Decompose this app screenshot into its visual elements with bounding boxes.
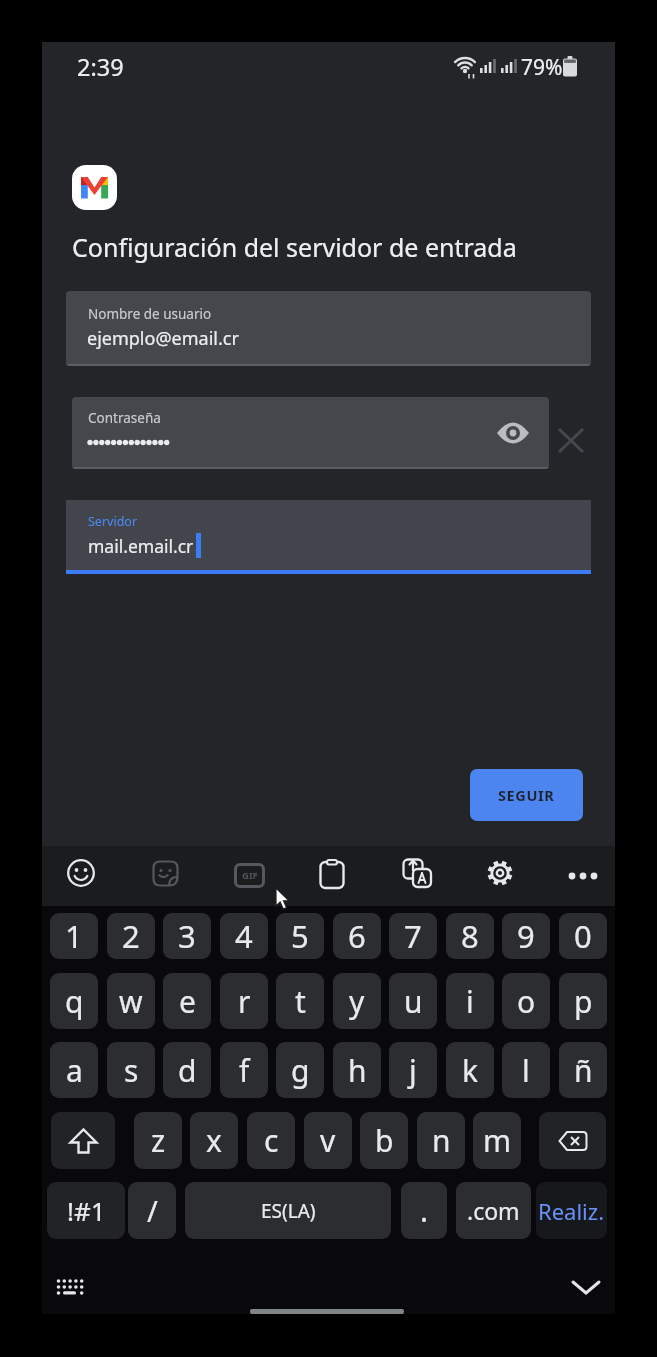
button[interactable]: . bbox=[401, 1182, 447, 1239]
staticText: !#1 bbox=[67, 1193, 106, 1228]
button[interactable]: Servidor bbox=[66, 500, 591, 570]
staticText: / bbox=[147, 1191, 158, 1230]
staticText: y bbox=[349, 981, 365, 1022]
staticText: SEGUIR bbox=[498, 785, 555, 805]
button[interactable] bbox=[570, 1278, 602, 1298]
button[interactable]: 3 bbox=[163, 913, 211, 959]
staticText: 0 bbox=[574, 915, 592, 957]
button[interactable]: ñ bbox=[559, 1042, 607, 1098]
staticText: m bbox=[483, 1120, 512, 1161]
button[interactable] bbox=[402, 858, 432, 888]
button[interactable]: t bbox=[276, 973, 324, 1029]
button[interactable]: Contraseña bbox=[72, 397, 549, 469]
button[interactable]: 0 bbox=[559, 913, 607, 959]
staticText: n bbox=[432, 1120, 451, 1161]
button[interactable]: !#1 bbox=[47, 1182, 125, 1239]
button[interactable]: o bbox=[502, 973, 550, 1029]
button[interactable]: v bbox=[304, 1112, 352, 1169]
staticText: 3 bbox=[178, 915, 196, 957]
staticText: GIF bbox=[242, 869, 258, 882]
button[interactable]: a bbox=[50, 1042, 98, 1098]
button[interactable]: f bbox=[220, 1042, 268, 1098]
button[interactable]: r bbox=[220, 973, 268, 1029]
staticText: s bbox=[124, 1050, 139, 1091]
button[interactable]: w bbox=[107, 973, 155, 1029]
button[interactable]: s bbox=[107, 1042, 155, 1098]
staticText: Configuración del servidor de entrada bbox=[72, 230, 517, 264]
button[interactable]: c bbox=[247, 1112, 295, 1169]
button[interactable]: / bbox=[128, 1182, 176, 1239]
button[interactable]: Realiz. bbox=[536, 1182, 607, 1239]
staticText: i bbox=[466, 981, 474, 1022]
button[interactable] bbox=[566, 871, 602, 881]
staticText: 4 bbox=[235, 915, 253, 957]
button[interactable]: k bbox=[446, 1042, 494, 1098]
button[interactable]: m bbox=[473, 1112, 521, 1169]
button[interactable]: GIF bbox=[234, 863, 265, 888]
button[interactable]: 6 bbox=[333, 913, 381, 959]
button[interactable]: x bbox=[190, 1112, 238, 1169]
button[interactable]: u bbox=[389, 973, 437, 1029]
button[interactable]: d bbox=[163, 1042, 211, 1098]
button[interactable] bbox=[67, 859, 95, 887]
staticText: r bbox=[238, 981, 251, 1022]
button[interactable]: j bbox=[389, 1042, 437, 1098]
button[interactable]: g bbox=[276, 1042, 324, 1098]
staticText: b bbox=[375, 1120, 394, 1161]
button[interactable]: p bbox=[559, 973, 607, 1029]
button[interactable] bbox=[558, 428, 584, 453]
button[interactable]: e bbox=[163, 973, 211, 1029]
staticText: z bbox=[151, 1120, 166, 1161]
button[interactable]: 4 bbox=[220, 913, 268, 959]
staticText: 7 bbox=[404, 915, 422, 957]
button[interactable] bbox=[51, 1112, 115, 1169]
button[interactable]: 7 bbox=[389, 913, 437, 959]
button[interactable]: Nombre de usuario bbox=[66, 291, 591, 366]
staticText: 5 bbox=[291, 915, 309, 957]
staticText: t bbox=[295, 981, 306, 1022]
button[interactable] bbox=[539, 1112, 606, 1169]
button[interactable]: 5 bbox=[276, 913, 324, 959]
button[interactable]: 1 bbox=[50, 913, 98, 959]
staticText: Servidor bbox=[88, 513, 138, 530]
staticText: j bbox=[409, 1050, 417, 1091]
button[interactable]: .com bbox=[456, 1182, 531, 1239]
staticText: 9 bbox=[517, 915, 535, 957]
staticText: k bbox=[462, 1050, 479, 1091]
staticText: 6 bbox=[348, 915, 366, 957]
button[interactable]: h bbox=[333, 1042, 381, 1098]
staticText: d bbox=[178, 1050, 197, 1091]
staticText: Nombre de usuario bbox=[88, 305, 212, 323]
button[interactable]: b bbox=[360, 1112, 408, 1169]
button[interactable]: l bbox=[502, 1042, 550, 1098]
staticText: 2 bbox=[122, 915, 140, 957]
staticText: ES(LA) bbox=[261, 1198, 316, 1224]
button[interactable]: SEGUIR bbox=[470, 769, 583, 821]
button[interactable]: z bbox=[134, 1112, 182, 1169]
staticText: . bbox=[420, 1190, 429, 1231]
staticText: u bbox=[404, 981, 423, 1022]
staticText: 2:39 bbox=[77, 51, 124, 83]
button[interactable] bbox=[55, 1278, 85, 1300]
staticText: a bbox=[66, 1050, 83, 1091]
staticText: ejemplo@email.cr bbox=[87, 326, 239, 351]
button[interactable] bbox=[485, 858, 515, 888]
staticText: x bbox=[206, 1120, 222, 1161]
button[interactable]: 8 bbox=[446, 913, 494, 959]
staticText: l bbox=[522, 1050, 530, 1091]
button[interactable]: 2 bbox=[107, 913, 155, 959]
button[interactable] bbox=[319, 859, 345, 889]
button[interactable]: ES(LA) bbox=[185, 1182, 391, 1239]
button[interactable]: y bbox=[333, 973, 381, 1029]
button[interactable]: n bbox=[417, 1112, 465, 1169]
button[interactable]: 9 bbox=[502, 913, 550, 959]
button[interactable]: i bbox=[446, 973, 494, 1029]
staticText: o bbox=[517, 981, 536, 1022]
staticText: e bbox=[179, 981, 196, 1022]
staticText: v bbox=[320, 1120, 336, 1161]
button[interactable]: q bbox=[50, 973, 98, 1029]
staticText: g bbox=[291, 1050, 310, 1091]
button[interactable] bbox=[152, 860, 179, 887]
staticText: 79% bbox=[521, 53, 563, 82]
staticText: mail.email.cr bbox=[88, 534, 194, 558]
